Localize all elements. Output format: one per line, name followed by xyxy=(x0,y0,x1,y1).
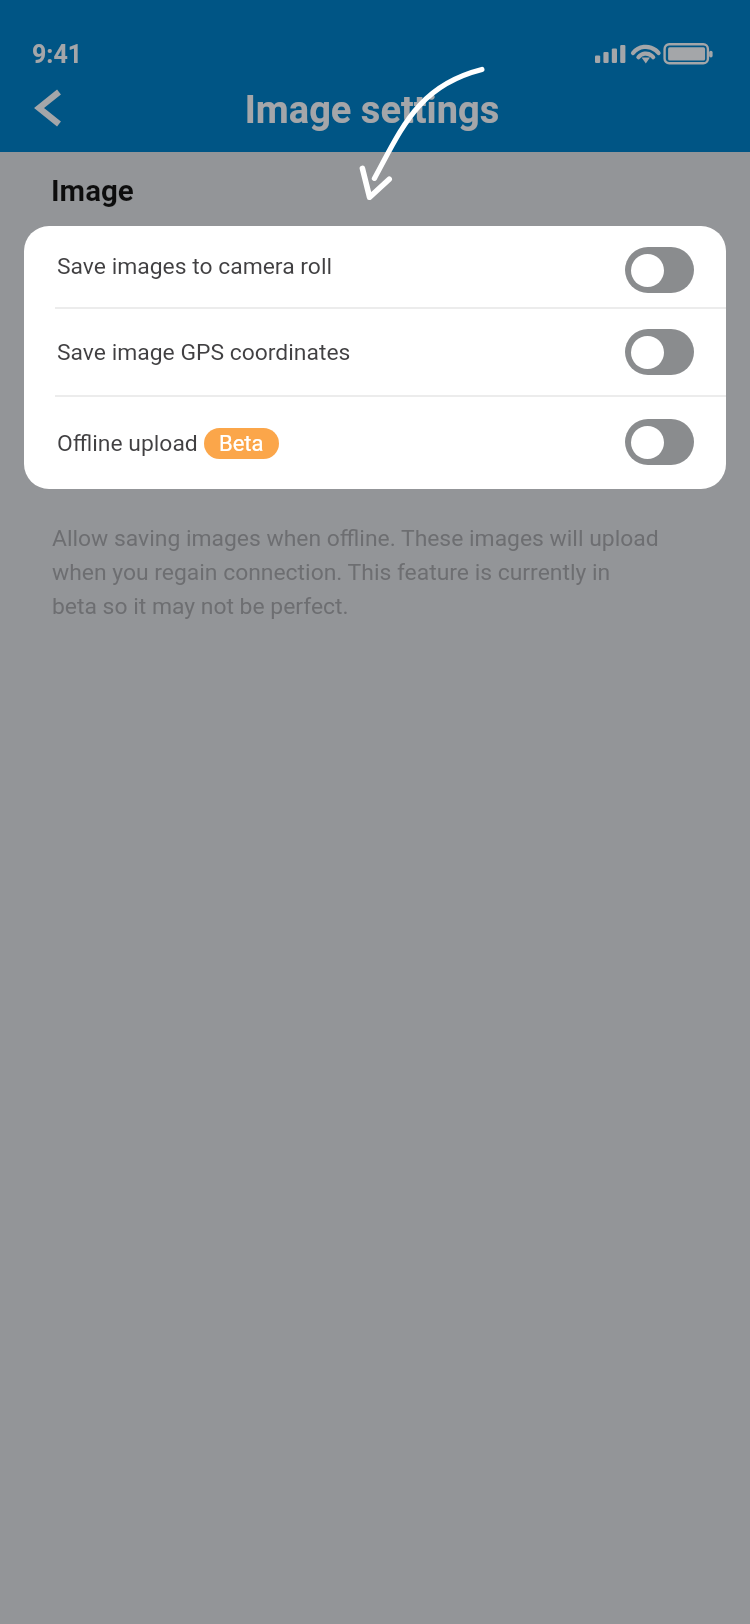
button[interactable]: Toggle xyxy=(625,247,694,293)
staticText: Offline upload xyxy=(57,430,198,457)
staticText: Save images to camera roll xyxy=(57,253,333,280)
button[interactable]: Back xyxy=(13,74,79,140)
button[interactable]: Save images to camera roll xyxy=(24,226,726,307)
button[interactable]: Toggle xyxy=(625,329,694,375)
staticText: 9:41 xyxy=(32,40,83,69)
staticText: Save image GPS coordinates xyxy=(57,339,351,366)
staticText: Image xyxy=(51,174,134,209)
staticText: Allow saving images when offline. These … xyxy=(52,519,659,621)
button[interactable]: Save image GPS coordinates xyxy=(24,309,726,395)
staticText: Beta xyxy=(219,431,264,457)
button[interactable]: Toggle xyxy=(625,419,694,465)
button[interactable]: Offline upload xyxy=(24,397,726,489)
staticText: Image settings xyxy=(0,88,747,133)
